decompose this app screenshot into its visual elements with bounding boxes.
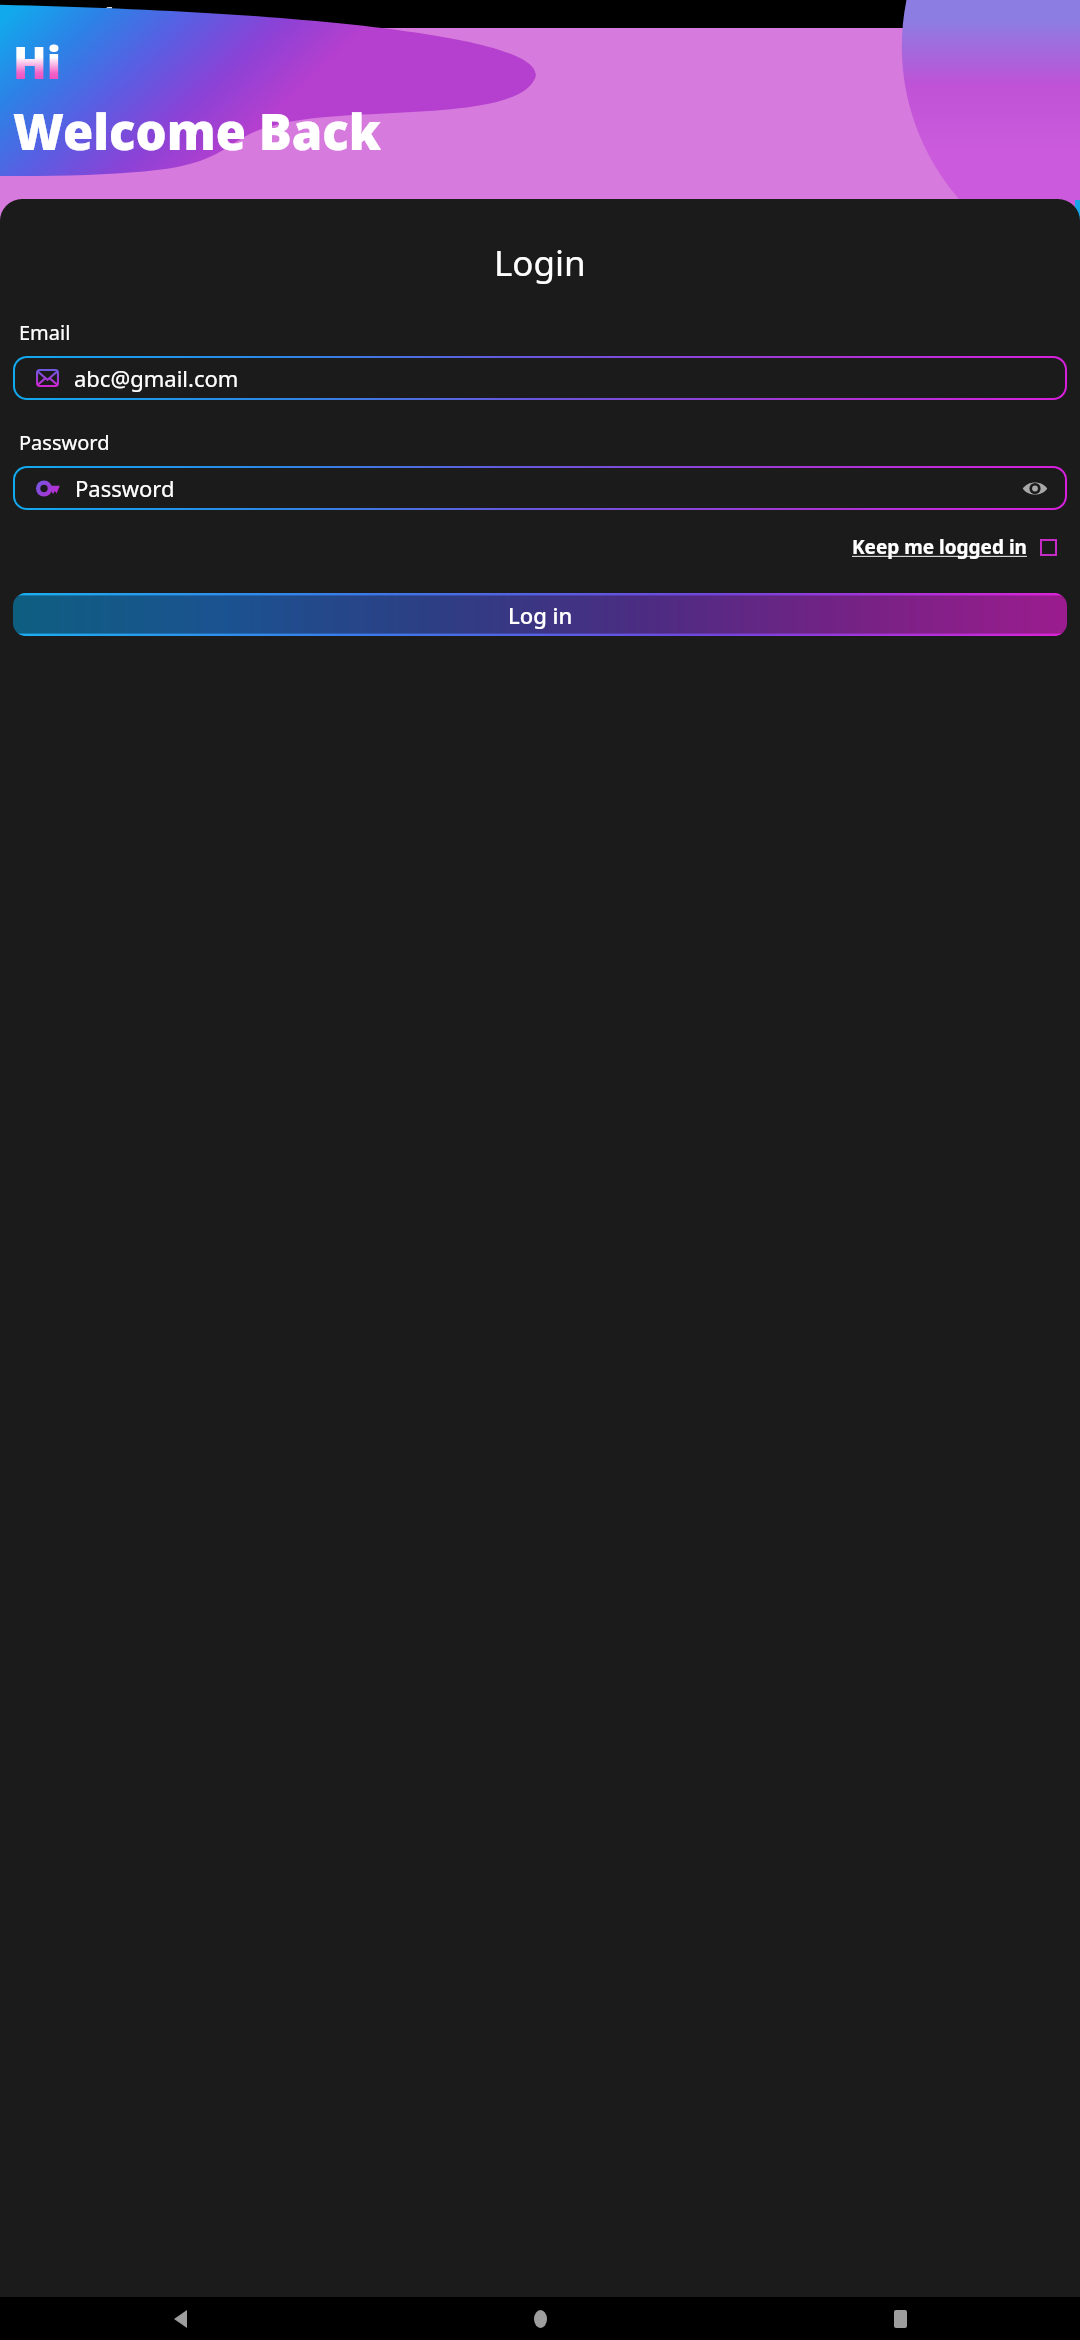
button[interactable]: Password: [15, 468, 1065, 508]
staticText: Hi: [13, 32, 62, 92]
staticText: Keep me logged in: [852, 534, 1027, 560]
button[interactable]: Home: [360, 2297, 720, 2340]
staticText: abc@gmail.com: [74, 363, 239, 393]
button[interactable]: Back: [0, 2297, 360, 2340]
staticText: 1:16: [37, 4, 67, 24]
button[interactable]: Log in: [13, 593, 1067, 636]
button[interactable]: Show password: [1019, 472, 1051, 504]
staticText: Welcome Back: [13, 98, 381, 165]
staticText: Email: [19, 319, 71, 346]
button[interactable]: Keep me logged in: [847, 527, 1062, 567]
staticText: Password: [19, 429, 110, 456]
staticText: Log in: [508, 600, 573, 630]
button[interactable]: Recent apps: [720, 2297, 1080, 2340]
staticText: Password: [75, 473, 175, 503]
staticText: Login: [494, 239, 586, 287]
button[interactable]: abc@gmail.com: [15, 358, 1065, 398]
